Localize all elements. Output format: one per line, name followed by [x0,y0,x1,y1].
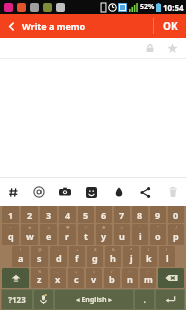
button[interactable]: @ [31,246,48,267]
staticText: 5 [83,209,89,221]
button[interactable]: ! [12,246,29,267]
button[interactable]: / [104,268,120,288]
staticText: f [75,252,79,264]
staticText: ( [148,247,150,252]
staticText: 6 [101,209,107,221]
button[interactable]: 6 [96,206,112,223]
button[interactable]: 0 [168,206,184,223]
button[interactable]: ( [141,246,157,267]
staticText: 2 [27,209,33,221]
button[interactable]: : [122,268,138,288]
button[interactable]: Symbols [2,290,32,309]
staticText: ?123 [8,294,26,305]
staticText: 7 [119,209,125,221]
button[interactable]: 2 [21,206,38,223]
button[interactable]: Hashtag [0,178,26,206]
button[interactable]: % [31,268,48,288]
button[interactable]: Ink [105,178,132,206]
button[interactable]: - [50,268,66,288]
button[interactable]: " [150,224,166,245]
staticText: y [101,230,107,242]
button[interactable]: Back [0,14,22,38]
button[interactable]: 9 [150,206,166,223]
button[interactable]: ) [159,246,175,267]
staticText: t [84,230,88,242]
staticText: q [8,230,14,242]
button[interactable]: Voice input [34,290,53,309]
button[interactable]: Backspace [158,268,184,288]
button[interactable]: ♣ [96,224,112,245]
button[interactable]: ♥ [59,224,76,245]
button[interactable]: ♧ [114,224,130,245]
staticText: ★ [28,225,32,230]
staticText: - [57,269,59,274]
staticText: o [155,230,161,242]
button[interactable]: Emoji [78,178,105,206]
button[interactable]: ♪ [168,224,184,245]
button[interactable]: 8 [132,206,148,223]
staticText: ◂ English ▸ [76,295,112,305]
staticText: w [26,230,34,242]
button[interactable]: ★ [21,224,38,245]
button[interactable]: Lock [142,40,158,56]
staticText: 0 [173,209,179,221]
button[interactable]: 7 [114,206,130,223]
button[interactable]: ☆ [40,224,57,245]
button[interactable]: Share [132,178,159,206]
staticText: ~ [9,225,12,230]
staticText: OK [163,19,178,33]
staticText: p [173,230,179,242]
button[interactable]: * [123,246,139,267]
button[interactable]: = [86,268,102,288]
staticText: Write a memo [22,20,86,32]
button[interactable]: Camera [52,178,78,206]
button[interactable]: 4 [59,206,76,223]
button[interactable]: ~ [2,224,19,245]
staticText: ♥ [66,225,70,230]
staticText: h [110,252,116,264]
button[interactable]: ; [140,268,156,288]
staticText: ♧ [120,225,124,230]
staticText: & [112,247,115,252]
button[interactable]: & [105,246,121,267]
staticText: s [37,252,42,264]
staticText: @ [38,247,42,252]
staticText: 1 [8,209,14,221]
button[interactable]: + [68,268,84,288]
staticText: j [130,252,133,264]
button[interactable]: - [50,246,67,267]
staticText: : [129,269,131,274]
button[interactable]: ' [132,224,148,245]
staticText: . [143,294,146,305]
button[interactable]: Delete [159,178,186,206]
staticText: 8 [137,209,143,221]
staticText: ! [20,247,22,252]
staticText: " [157,225,159,230]
button[interactable]: Shift [2,268,29,288]
button[interactable]: Enter [156,290,184,309]
button[interactable]: + [69,246,85,267]
button[interactable]: Mention [26,178,52,206]
staticText: 3 [46,209,52,221]
staticText: b [109,273,115,285]
staticText: ; [147,269,149,274]
staticText: 10:54 [163,2,184,13]
button[interactable]: 1 [2,206,19,223]
button[interactable]: ♡ [78,224,94,245]
staticText: l [166,252,169,264]
button[interactable]: 3 [40,206,57,223]
staticText: # [94,247,97,252]
button[interactable]: OK [154,14,186,38]
staticText: c [74,273,79,285]
staticText: u [119,230,125,242]
button[interactable]: Space [55,290,133,309]
button[interactable]: Favorite [164,40,180,56]
staticText: ♪ [175,225,178,230]
staticText: 4 [65,209,71,221]
staticText: - [58,247,60,252]
button[interactable]: # [87,246,103,267]
button[interactable]: Period [135,290,154,309]
button[interactable]: 5 [78,206,94,223]
staticText: / [111,269,113,274]
